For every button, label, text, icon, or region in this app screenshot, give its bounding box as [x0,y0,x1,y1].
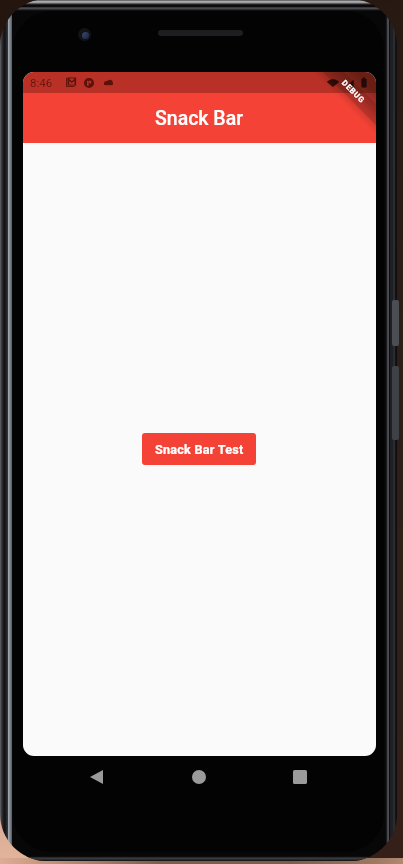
button[interactable]: Snack Bar Test [142,433,256,465]
button[interactable]: Recent apps [266,755,334,799]
staticText: 8:46 [30,76,53,89]
staticText: Snack Bar [155,107,244,130]
staticText: DEBUG [340,78,367,105]
button[interactable]: Home [165,755,233,799]
button[interactable]: Back [62,755,130,799]
staticText: Snack Bar Test [155,442,244,457]
